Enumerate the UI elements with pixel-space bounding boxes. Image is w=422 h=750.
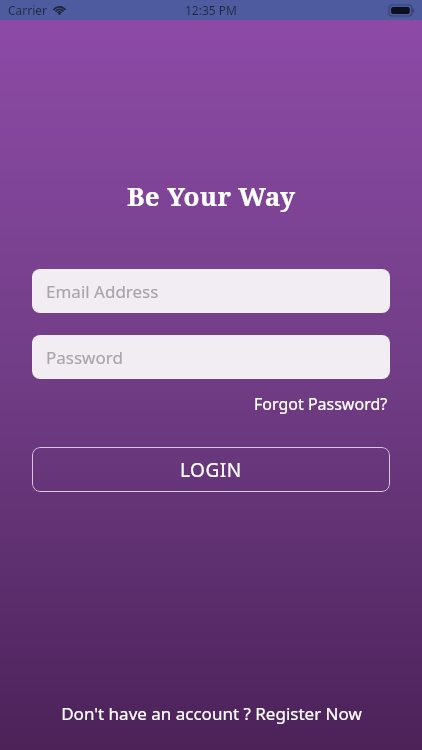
staticText: Forgot Password? [254,393,388,415]
staticText: 12:35 PM [185,2,237,18]
staticText: Carrier [8,2,48,18]
button[interactable]: Password [32,335,390,379]
staticText: LOGIN [180,457,242,483]
other: Wi-Fi signal [53,5,66,15]
staticText: Password [46,346,123,369]
button[interactable]: Forgot Password? [252,390,390,418]
staticText: Email Address [46,280,159,303]
other: Battery full [389,5,415,16]
button[interactable]: Don't have an account ? Register Now [0,694,422,733]
staticText: Don't have an account ? Register Now [61,702,362,725]
button[interactable]: Email Address [32,269,390,313]
button[interactable]: LOGIN [32,447,390,492]
staticText: Be Your Way [127,178,296,213]
